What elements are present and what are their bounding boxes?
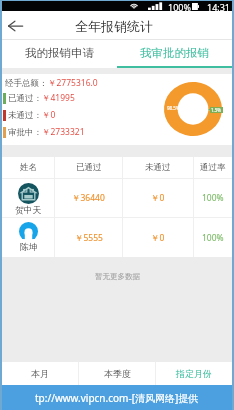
staticText: tp://www.vipcn.com-[清风网络]提供 [35,391,199,405]
staticText: 已通过： [8,93,42,104]
button[interactable]: 贺中天 [2,179,232,217]
staticText: 指定月份 [176,368,212,379]
staticText: 未通过 [145,162,171,173]
button[interactable]: 陈坤 [2,218,232,257]
staticText: 1.5% [211,107,222,113]
staticText: 已通过 [76,162,102,173]
staticText: ￥2733321 [42,126,85,138]
staticText: ￥0 [151,232,165,244]
staticText: 100% [202,232,224,244]
button[interactable]: 本季度 [79,362,155,385]
staticText: ￥0 [42,109,56,121]
staticText: 陈坤 [20,242,38,253]
staticText: 贺中天 [15,205,42,216]
staticText: ￥41995 [42,92,75,104]
staticText: ￥0 [151,192,165,204]
button[interactable]: 本月 [2,362,78,385]
staticText: 暂无更多数据 [95,272,140,281]
staticText: 100% [202,192,224,204]
staticText: ￥5555 [75,232,103,244]
staticText: 我的报销申请 [25,46,94,60]
staticText: 姓名 [20,162,37,173]
staticText: ￥2775316.0 [48,77,98,89]
staticText: 经手总额： [5,78,48,89]
button[interactable]: 我的报销申请 [2,40,117,68]
staticText: 未通过： [8,110,42,121]
staticText: 本月 [31,368,49,379]
staticText: 通过率 [200,162,226,173]
staticText: 14:31 [207,1,231,11]
staticText: 全年报销统计 [75,18,153,34]
staticText: 100% [168,1,191,11]
staticText: 98.5% [167,105,180,111]
button[interactable]: 我审批的报销 [117,40,232,68]
staticText: ￥36440 [72,192,105,204]
button[interactable]: 返回 [4,15,26,37]
staticText: 本季度 [104,368,131,379]
button[interactable]: 指定月份 [156,362,232,385]
staticText: 我审批的报销 [140,46,209,60]
staticText: 审批中： [8,127,42,138]
